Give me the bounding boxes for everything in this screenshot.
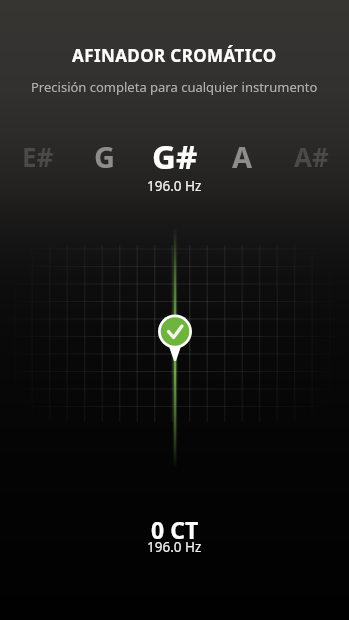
button[interactable]: A xyxy=(232,137,253,176)
button[interactable]: G# xyxy=(152,134,198,179)
staticText: G# xyxy=(152,134,198,179)
staticText: E# xyxy=(22,139,54,174)
staticText: 196.0 Hz xyxy=(147,177,202,195)
staticText: AFINADOR CROMÁTICO xyxy=(72,44,277,67)
staticText: A# xyxy=(294,139,329,174)
staticText: Precisión completa para cualquier instru… xyxy=(31,78,318,96)
staticText: A xyxy=(232,137,253,176)
staticText: 196.0 Hz xyxy=(147,538,202,556)
staticText: 0 CT xyxy=(151,514,199,545)
staticText: G xyxy=(94,137,115,176)
button[interactable]: A# xyxy=(294,139,329,174)
button[interactable]: E# xyxy=(22,139,54,174)
button[interactable]: G xyxy=(94,137,115,176)
